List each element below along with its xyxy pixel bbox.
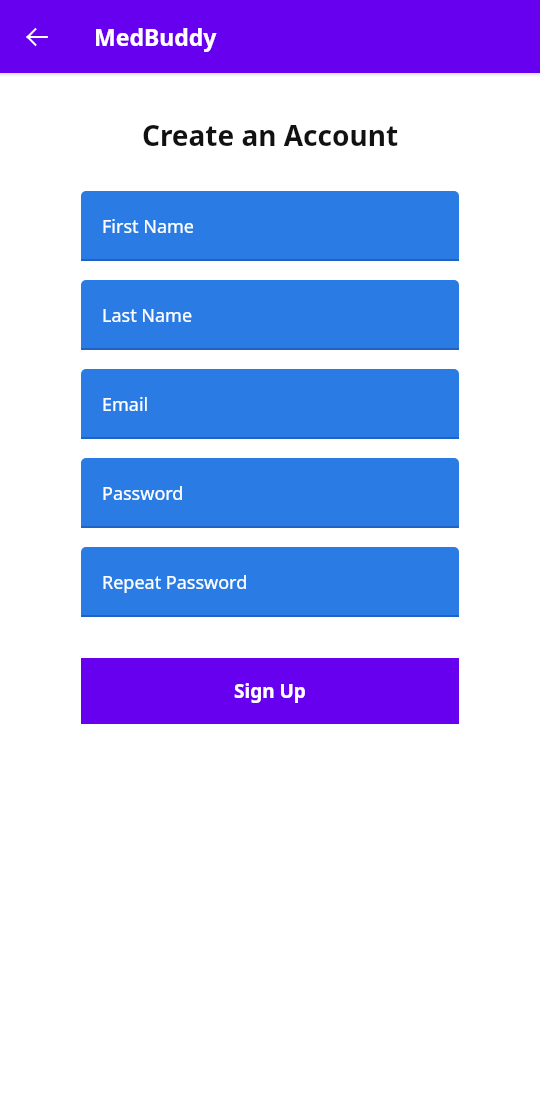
staticText: First Name xyxy=(102,214,194,239)
staticText: MedBuddy xyxy=(94,21,217,52)
button[interactable]: Repeat Password xyxy=(81,547,459,617)
staticText: Sign Up xyxy=(234,678,306,704)
button[interactable]: First Name xyxy=(81,191,459,261)
staticText: Password xyxy=(102,481,184,506)
staticText: Repeat Password xyxy=(102,570,248,595)
button[interactable]: Sign Up xyxy=(81,658,459,724)
button[interactable]: Password xyxy=(81,458,459,528)
staticText: Last Name xyxy=(102,303,193,328)
button[interactable]: Email xyxy=(81,369,459,439)
staticText: Create an Account xyxy=(81,116,459,154)
button[interactable]: Last Name xyxy=(81,280,459,350)
staticText: Email xyxy=(102,392,149,417)
button[interactable]: Back xyxy=(14,14,60,60)
